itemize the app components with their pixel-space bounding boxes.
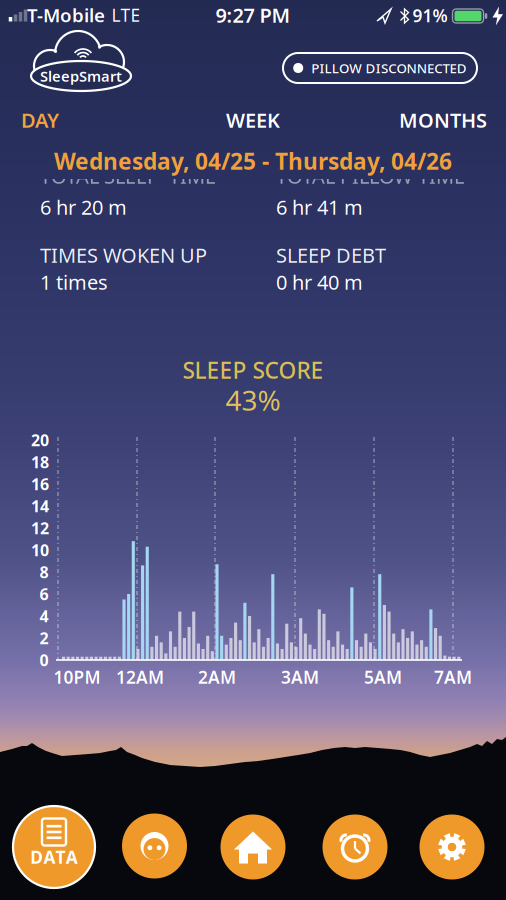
staticText: 16 bbox=[31, 473, 49, 495]
staticText: MONTHS bbox=[399, 107, 487, 133]
button[interactable]: Alarm bbox=[322, 814, 387, 879]
staticText: 12AM bbox=[116, 665, 164, 688]
staticText: 4 bbox=[39, 605, 48, 627]
staticText: TOTAL PILLOW TIME bbox=[276, 163, 465, 189]
button[interactable]: Home bbox=[220, 814, 285, 879]
staticText: 0 hr 40 m bbox=[276, 269, 363, 295]
button[interactable]: MONTHS bbox=[399, 107, 487, 133]
staticText: 18 bbox=[31, 451, 49, 473]
staticText: TOTAL SLEEP TIME bbox=[40, 163, 216, 189]
staticText: Wednesday, 04/25 - Thursday, 04/26 bbox=[54, 146, 452, 176]
staticText: DAY bbox=[21, 107, 59, 133]
button[interactable]: WEEK bbox=[226, 107, 280, 133]
staticText: 12 bbox=[31, 517, 49, 539]
staticText: 2 bbox=[39, 627, 48, 649]
staticText: 14 bbox=[31, 495, 49, 517]
staticText: 1 times bbox=[40, 269, 108, 295]
staticText: 7AM bbox=[434, 665, 472, 688]
staticText: SLEEP SCORE bbox=[182, 355, 323, 385]
button[interactable]: PILLOW DISCONNECTED bbox=[283, 53, 477, 83]
staticText: 0 bbox=[39, 649, 48, 671]
staticText: 43% bbox=[225, 381, 280, 419]
staticText: LTE bbox=[111, 3, 140, 26]
staticText: 6 bbox=[39, 583, 48, 605]
staticText: 6 hr 41 m bbox=[276, 194, 363, 220]
staticText: 10PM bbox=[53, 665, 100, 688]
staticText: SLEEP DEBT bbox=[276, 242, 386, 268]
staticText: 3AM bbox=[281, 665, 319, 688]
staticText: 10 bbox=[31, 539, 49, 561]
staticText: 91% bbox=[412, 4, 447, 27]
staticText: 6 hr 20 m bbox=[40, 194, 127, 220]
staticText: 5AM bbox=[364, 665, 402, 688]
staticText: 9:27 PM bbox=[215, 2, 290, 28]
button[interactable]: DAY bbox=[21, 107, 59, 133]
button[interactable]: Baby bbox=[122, 813, 187, 878]
staticText: 8 bbox=[39, 561, 48, 583]
staticText: WEEK bbox=[226, 107, 280, 133]
staticText: T-Mobile bbox=[27, 3, 105, 27]
staticText: PILLOW DISCONNECTED bbox=[311, 59, 467, 77]
staticText: SleepSmart bbox=[40, 66, 122, 86]
staticText: 20 bbox=[31, 429, 49, 451]
button[interactable]: DATA bbox=[13, 806, 95, 888]
button[interactable]: Settings bbox=[419, 814, 484, 879]
staticText: TIMES WOKEN UP bbox=[40, 242, 207, 268]
staticText: 2AM bbox=[198, 665, 236, 688]
staticText: DATA bbox=[30, 845, 78, 868]
